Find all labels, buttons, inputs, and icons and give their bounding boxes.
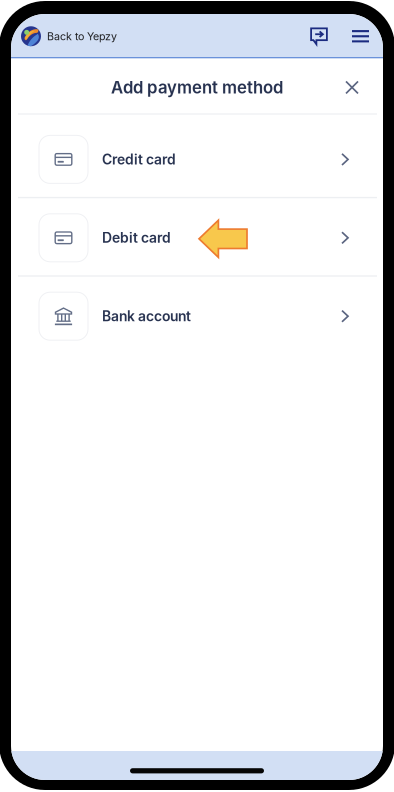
staticText: Back to Yepzy [47, 30, 117, 43]
staticText: Debit card [102, 229, 171, 246]
button[interactable]: Back to Yepzy [11, 26, 117, 46]
staticText: Credit card [102, 151, 176, 168]
button[interactable]: Credit card [11, 120, 383, 197]
button[interactable]: Close [345, 80, 359, 94]
staticText: Add payment method [111, 77, 283, 98]
button[interactable]: Debit card [11, 198, 383, 275]
button[interactable]: Menu [328, 30, 370, 42]
button[interactable]: Send feedback [310, 27, 328, 45]
staticText: Bank account [102, 308, 191, 325]
button[interactable]: Bank account [11, 277, 383, 354]
